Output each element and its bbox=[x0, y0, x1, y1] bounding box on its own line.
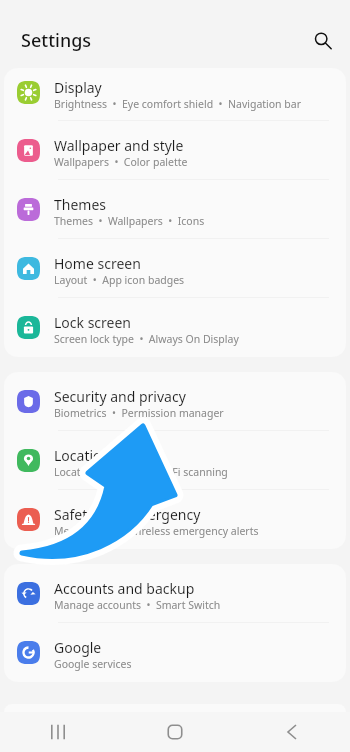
button[interactable]: Recent apps bbox=[0, 712, 116, 752]
button[interactable]: Location bbox=[4, 431, 346, 490]
staticText: Manage accounts • Smart Switch bbox=[54, 598, 221, 612]
staticText: Home screen bbox=[54, 254, 141, 273]
staticText: Safety and emergency bbox=[54, 505, 201, 524]
staticText: Themes • Wallpapers • Icons bbox=[54, 214, 205, 228]
staticText: Google services bbox=[54, 657, 132, 671]
staticText: Accounts and backup bbox=[54, 579, 195, 598]
staticText: Google bbox=[54, 638, 102, 657]
staticText: Brightness • Eye comfort shield • Naviga… bbox=[54, 97, 302, 111]
button[interactable]: Home bbox=[116, 712, 233, 752]
button[interactable]: Themes bbox=[4, 180, 346, 239]
button[interactable]: Security and privacy bbox=[4, 372, 346, 431]
staticText: Themes bbox=[54, 195, 107, 214]
staticText: Security and privacy bbox=[54, 387, 186, 406]
staticText: Location bbox=[54, 446, 111, 465]
staticText: Medical info • Wireless emergency alerts bbox=[54, 524, 259, 538]
staticText: Settings bbox=[21, 28, 92, 53]
button[interactable]: Safety and emergency bbox=[4, 490, 346, 549]
staticText: Wallpaper and style bbox=[54, 136, 184, 155]
staticText: Screen lock type • Always On Display bbox=[54, 332, 239, 346]
button[interactable]: Google bbox=[4, 623, 346, 682]
button[interactable]: Search bbox=[306, 24, 340, 58]
staticText: Layout • App icon badges bbox=[54, 273, 185, 287]
staticText: Wallpapers • Color palette bbox=[54, 155, 188, 169]
button[interactable]: Back bbox=[233, 712, 350, 752]
staticText: Lock screen bbox=[54, 313, 132, 332]
staticText: Biometrics • Permission manager bbox=[54, 406, 224, 420]
button[interactable]: Home screen bbox=[4, 239, 346, 298]
staticText: Location requests • Wi-Fi scanning bbox=[54, 465, 228, 479]
staticText: Display bbox=[54, 78, 102, 97]
button[interactable]: Wallpaper and style bbox=[4, 121, 346, 180]
button[interactable]: Accounts and backup bbox=[4, 564, 346, 623]
button[interactable]: Lock screen bbox=[4, 298, 346, 357]
button[interactable]: Display bbox=[4, 68, 346, 121]
